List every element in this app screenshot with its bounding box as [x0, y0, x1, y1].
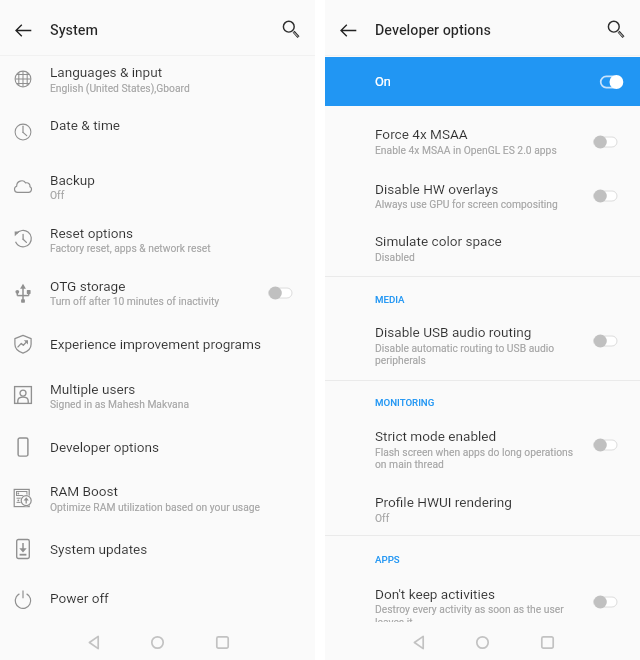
button[interactable]: On — [325, 57, 640, 106]
staticText: Destroy every activity as soon as the us… — [375, 603, 564, 615]
staticText: English (United States),Gboard — [50, 82, 190, 94]
button[interactable]: Toggle Force 4x MSAA — [590, 132, 620, 152]
button[interactable]: Navigate up — [333, 16, 362, 45]
staticText: OTG storage — [50, 278, 126, 294]
staticText: System updates — [50, 541, 148, 557]
button[interactable] — [0, 213, 315, 265]
button[interactable] — [0, 421, 315, 473]
staticText: Power off — [50, 590, 109, 606]
staticText: Multiple users — [50, 381, 136, 397]
staticText: Profile HWUI rendering — [375, 494, 512, 510]
button[interactable]: Toggle Don't keep activities — [590, 592, 620, 612]
button[interactable]: Home — [144, 629, 170, 655]
button[interactable] — [0, 267, 315, 319]
button[interactable] — [325, 487, 640, 531]
staticText: APPS — [375, 554, 400, 565]
button[interactable] — [0, 106, 315, 158]
button[interactable]: Back — [81, 629, 107, 655]
button[interactable]: Toggle OTG storage — [265, 283, 295, 303]
button[interactable]: Back — [406, 629, 432, 655]
staticText: Turn off after 10 minutes of inactivity — [50, 295, 220, 307]
button[interactable] — [0, 523, 315, 575]
staticText: MONITORING — [375, 397, 435, 408]
button[interactable] — [325, 580, 640, 624]
other: Developer options on — [590, 72, 620, 92]
button[interactable]: Toggle Disable HW overlays — [590, 186, 620, 206]
staticText: Signed in as Mahesh Makvana — [50, 398, 189, 410]
staticText: System — [50, 22, 98, 39]
staticText: Disabled — [375, 251, 415, 263]
staticText: leaves it — [375, 616, 413, 628]
button[interactable] — [0, 574, 315, 626]
staticText: Strict mode enabled — [375, 428, 497, 444]
staticText: Off — [375, 512, 390, 524]
button[interactable]: Search — [600, 12, 629, 41]
staticText: Experience improvement programs — [50, 336, 261, 352]
button[interactable] — [0, 369, 315, 421]
button[interactable] — [0, 318, 315, 370]
staticText: Backup — [50, 172, 95, 188]
staticText: Simulate color space — [375, 233, 502, 249]
button[interactable]: Toggle Disable USB audio routing — [590, 331, 620, 351]
button[interactable] — [325, 174, 640, 218]
button[interactable]: Recent apps — [534, 629, 560, 655]
staticText: Always use GPU for screen compositing — [375, 198, 558, 210]
button[interactable] — [325, 319, 640, 363]
staticText: On — [375, 74, 391, 89]
staticText: Languages & input — [50, 64, 163, 80]
staticText: Force 4x MSAA — [375, 126, 468, 142]
button[interactable] — [325, 120, 640, 164]
staticText: Factory reset, apps & network reset — [50, 242, 211, 254]
staticText: Reset options — [50, 225, 134, 241]
staticText: Don't keep activities — [375, 586, 495, 602]
staticText: Developer options — [50, 439, 160, 455]
staticText: MEDIA — [375, 294, 405, 305]
staticText: peripherals — [375, 354, 426, 366]
staticText: Developer options — [375, 22, 491, 39]
button[interactable] — [325, 423, 640, 467]
button[interactable] — [0, 160, 315, 212]
button[interactable] — [0, 53, 315, 105]
staticText: Date & time — [50, 117, 121, 133]
staticText: on main thread — [375, 458, 444, 470]
button[interactable]: Recent apps — [209, 629, 235, 655]
staticText: Disable HW overlays — [375, 181, 499, 197]
staticText: Disable USB audio routing — [375, 324, 532, 340]
button[interactable] — [0, 472, 315, 524]
button[interactable]: Toggle Strict mode enabled — [590, 435, 620, 455]
staticText: Disable automatic routing to USB audio — [375, 342, 555, 354]
staticText: Off — [50, 189, 65, 201]
staticText: RAM Boost — [50, 483, 118, 499]
button[interactable]: Home — [469, 629, 495, 655]
button[interactable]: Search — [275, 12, 304, 41]
button[interactable]: Navigate up — [8, 16, 37, 45]
staticText: Optimize RAM utilization based on your u… — [50, 501, 261, 513]
staticText: Enable 4x MSAA in OpenGL ES 2.0 apps — [375, 144, 557, 156]
button[interactable] — [325, 227, 640, 271]
staticText: Flash screen when apps do long operation… — [375, 446, 574, 458]
